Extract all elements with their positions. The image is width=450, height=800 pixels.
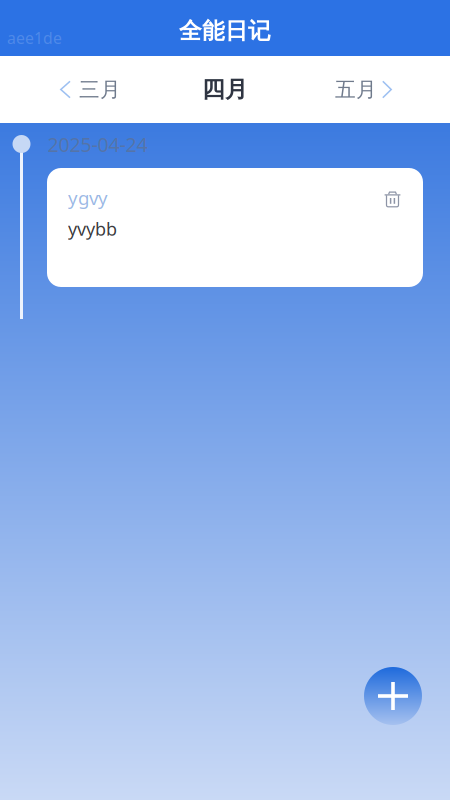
- button[interactable]: 三月: [50, 56, 131, 123]
- staticText: 全能日记: [179, 17, 271, 45]
- button[interactable]: Add entry: [364, 667, 422, 725]
- staticText: 三月: [79, 76, 121, 102]
- staticText: aee1de: [7, 27, 62, 49]
- staticText: ygvy: [68, 185, 108, 210]
- staticText: 五月: [335, 76, 377, 102]
- staticText: 四月: [202, 75, 248, 104]
- button[interactable]: 四月: [184, 56, 266, 123]
- staticText: yvybb: [68, 216, 117, 241]
- button[interactable]: Delete entry: [384, 185, 401, 208]
- staticText: 2025-04-24: [47, 131, 147, 158]
- button[interactable]: 五月: [325, 56, 402, 123]
- button[interactable]: ygvy: [47, 168, 423, 287]
